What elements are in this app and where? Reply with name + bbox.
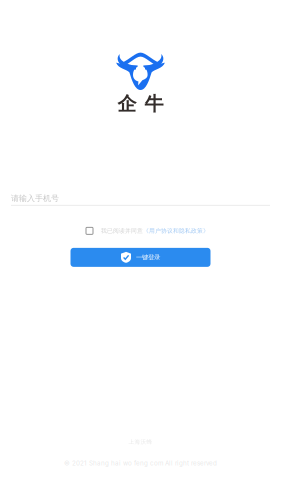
staticText: 我已阅读并同意 bbox=[101, 227, 143, 234]
staticText: 请输入手机号 bbox=[11, 193, 59, 203]
button[interactable]: 我已阅读并同意 bbox=[72, 226, 209, 236]
staticText: 企牛 bbox=[117, 92, 163, 116]
staticText: 一键登录 bbox=[136, 253, 160, 261]
staticText: 《用户协议和隐私政策》 bbox=[143, 227, 209, 234]
staticText: © 2021 Shang hai wo feng com All right r… bbox=[64, 459, 217, 467]
button[interactable]: 一键登录 bbox=[70, 248, 210, 267]
staticText: 上海沃蜂 bbox=[128, 438, 152, 445]
